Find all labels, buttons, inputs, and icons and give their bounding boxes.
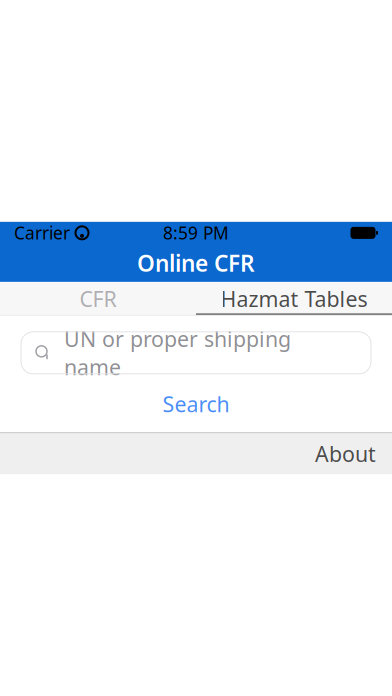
staticText: 8:59 PM (163, 221, 229, 244)
button[interactable]: Hazmat Tables (196, 282, 392, 315)
staticText: About (315, 439, 376, 468)
button[interactable]: CFR (0, 282, 196, 315)
staticText: Search (162, 390, 229, 418)
button[interactable]: Search (148, 384, 243, 424)
staticText: CFR (79, 285, 116, 313)
staticText: Online CFR (137, 248, 255, 278)
staticText: Hazmat Tables (220, 285, 367, 313)
staticText: UN or proper shipping name (64, 324, 291, 381)
staticText: Carrier (14, 221, 70, 244)
button[interactable]: About (301, 429, 390, 478)
